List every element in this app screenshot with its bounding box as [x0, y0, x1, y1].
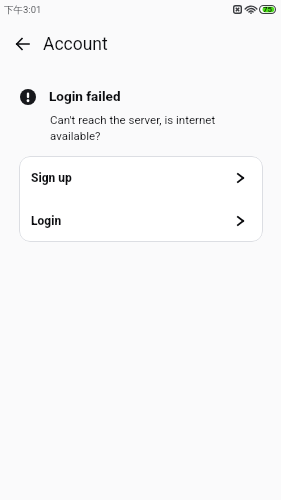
staticText: Login failed [49, 88, 121, 104]
staticText: 75 [263, 5, 273, 14]
staticText: 下午3:01 [4, 4, 42, 16]
button[interactable]: Sign up [19, 156, 263, 199]
staticText: Can't reach the server, is internet avai… [50, 113, 226, 142]
staticText: Account [43, 34, 108, 55]
staticText: Login [31, 214, 62, 228]
button[interactable]: Login [19, 199, 263, 242]
button[interactable]: Back [5, 26, 40, 61]
staticText: Sign up [31, 171, 72, 185]
